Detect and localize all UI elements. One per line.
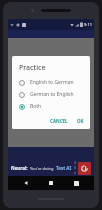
button[interactable]: English to German [19, 79, 86, 86]
button[interactable]: Recent apps [69, 176, 83, 190]
button[interactable]: Both [19, 103, 86, 110]
staticText: 9:11 [84, 22, 92, 27]
button[interactable]: German to English [19, 91, 86, 98]
button[interactable]: Home [44, 176, 58, 190]
staticText: German to English [30, 91, 74, 98]
button[interactable]: Back [19, 176, 33, 190]
staticText: Practice [19, 63, 46, 73]
staticText: Neural: [11, 165, 28, 171]
button[interactable]: CANCEL [48, 117, 70, 125]
staticText: 320 x 50 [74, 160, 76, 176]
staticText: CANCEL [50, 118, 68, 124]
staticText: OK [77, 118, 84, 124]
button[interactable]: OK [75, 117, 86, 125]
staticText: Both [30, 103, 42, 110]
staticText: Test AI [56, 165, 72, 171]
staticText: You're doing [30, 166, 54, 171]
staticText: English to German [30, 79, 74, 86]
button[interactable]: Neural: [8, 160, 94, 176]
